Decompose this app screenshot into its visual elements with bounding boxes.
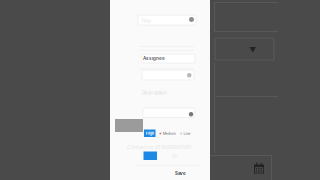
staticText: Medium — [163, 131, 176, 136]
staticText: Assignee — [143, 56, 165, 61]
staticText: Description — [142, 90, 167, 95]
staticText: No — [172, 153, 178, 158]
staticText: Title — [141, 17, 151, 24]
staticText: Contact us 91 8098982595 — [127, 144, 191, 150]
staticText: Save — [175, 171, 186, 176]
staticText: High — [146, 131, 154, 136]
staticText: Low — [183, 131, 190, 136]
